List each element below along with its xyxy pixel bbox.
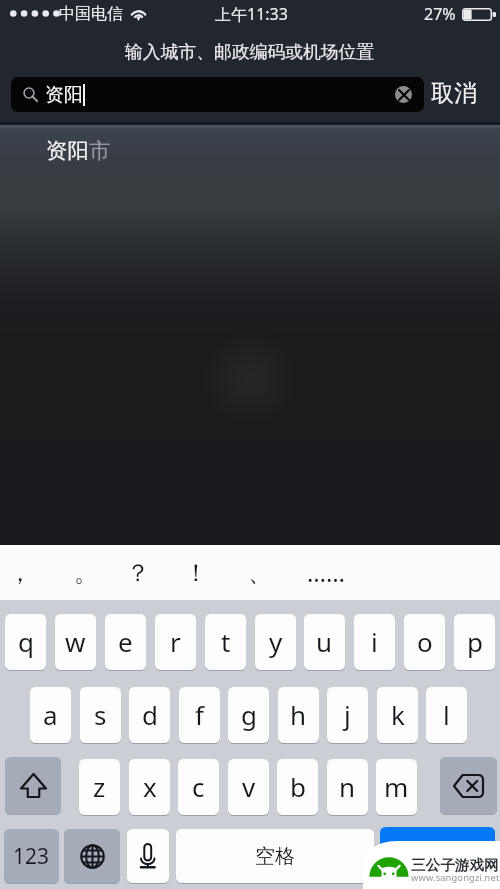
staticText: www.sangongzi.net (411, 871, 500, 884)
button[interactable]: b (277, 759, 318, 815)
button[interactable]: q (5, 614, 46, 670)
button[interactable]: 资阳 (11, 77, 424, 112)
staticText: k (391, 697, 405, 732)
button[interactable]: p (454, 614, 495, 670)
button[interactable]: Backspace (440, 757, 497, 814)
button[interactable]: o (404, 614, 445, 670)
staticText: v (242, 769, 256, 804)
staticText: x (143, 769, 157, 804)
staticText: 资阳 (46, 137, 89, 164)
button[interactable]: v (228, 759, 269, 815)
staticText: y (269, 624, 283, 659)
button[interactable]: i (354, 614, 395, 670)
button[interactable]: l (426, 687, 467, 743)
button[interactable]: 取消 (426, 77, 488, 112)
button[interactable]: y (255, 614, 296, 670)
staticText: ？ (126, 558, 150, 588)
button[interactable]: a (30, 687, 71, 743)
staticText: 27% (424, 3, 456, 25)
button[interactable]: Shift (5, 757, 61, 814)
button[interactable]: ？ (110, 545, 166, 600)
staticText: …… (307, 556, 345, 589)
button[interactable]: w (55, 614, 96, 670)
staticText: l (443, 697, 450, 732)
button[interactable]: n (327, 759, 368, 815)
staticText: 取消 (431, 79, 477, 108)
staticText: p (467, 624, 483, 659)
staticText: ！ (184, 558, 208, 588)
staticText: e (118, 624, 133, 659)
staticText: u (316, 624, 333, 659)
button[interactable]: 搜索 (380, 827, 495, 882)
staticText: 市 (89, 137, 111, 164)
button[interactable]: Voice input (127, 829, 169, 883)
button[interactable]: 空格 (176, 829, 374, 883)
button[interactable]: 。 (58, 545, 114, 600)
button[interactable]: r (155, 614, 196, 670)
staticText: 三公子游戏网 (411, 856, 499, 874)
button[interactable]: d (129, 687, 170, 743)
staticText: g (241, 697, 257, 732)
button[interactable]: c (178, 759, 219, 815)
staticText: 123 (13, 842, 50, 871)
staticText: o (417, 624, 433, 659)
button[interactable]: u (304, 614, 345, 670)
staticText: m (384, 769, 409, 804)
button[interactable]: ， (0, 545, 48, 600)
staticText: n (339, 769, 356, 804)
staticText: 搜索 (419, 843, 457, 867)
staticText: z (93, 769, 106, 804)
staticText: ， (8, 558, 32, 588)
button[interactable]: 资阳 (0, 124, 500, 172)
button[interactable]: e (105, 614, 146, 670)
button[interactable]: Change keyboard (64, 829, 120, 883)
staticText: t (221, 624, 231, 659)
button[interactable]: f (179, 687, 220, 743)
staticText: 上午11:33 (215, 3, 288, 25)
staticText: 、 (248, 558, 272, 588)
staticText: a (43, 697, 58, 732)
button[interactable]: x (129, 759, 170, 815)
staticText: 中国电信 (59, 4, 123, 24)
button[interactable]: t (205, 614, 246, 670)
staticText: q (18, 624, 34, 659)
staticText: j (344, 697, 351, 732)
button[interactable]: 、 (232, 545, 288, 600)
staticText: 输入城市、邮政编码或机场位置 (125, 41, 375, 63)
button[interactable]: ！ (168, 545, 224, 600)
button[interactable]: s (80, 687, 121, 743)
button[interactable]: Clear text (395, 86, 412, 103)
staticText: 空格 (255, 844, 295, 869)
staticText: r (170, 624, 181, 659)
button[interactable]: k (377, 687, 418, 743)
button[interactable]: z (79, 759, 120, 815)
staticText: s (94, 697, 107, 732)
button[interactable]: m (376, 759, 417, 815)
staticText: h (290, 697, 307, 732)
button[interactable]: j (327, 687, 368, 743)
staticText: d (142, 697, 158, 732)
staticText: 资阳 (45, 83, 83, 107)
staticText: f (195, 697, 204, 732)
staticText: i (371, 624, 378, 659)
staticText: b (290, 769, 306, 804)
button[interactable]: …… (298, 545, 354, 600)
button[interactable]: g (228, 687, 269, 743)
staticText: 。 (74, 558, 98, 588)
staticText: w (65, 624, 86, 659)
staticText: c (192, 769, 205, 804)
button[interactable]: 123 (4, 829, 59, 883)
button[interactable]: h (278, 687, 319, 743)
